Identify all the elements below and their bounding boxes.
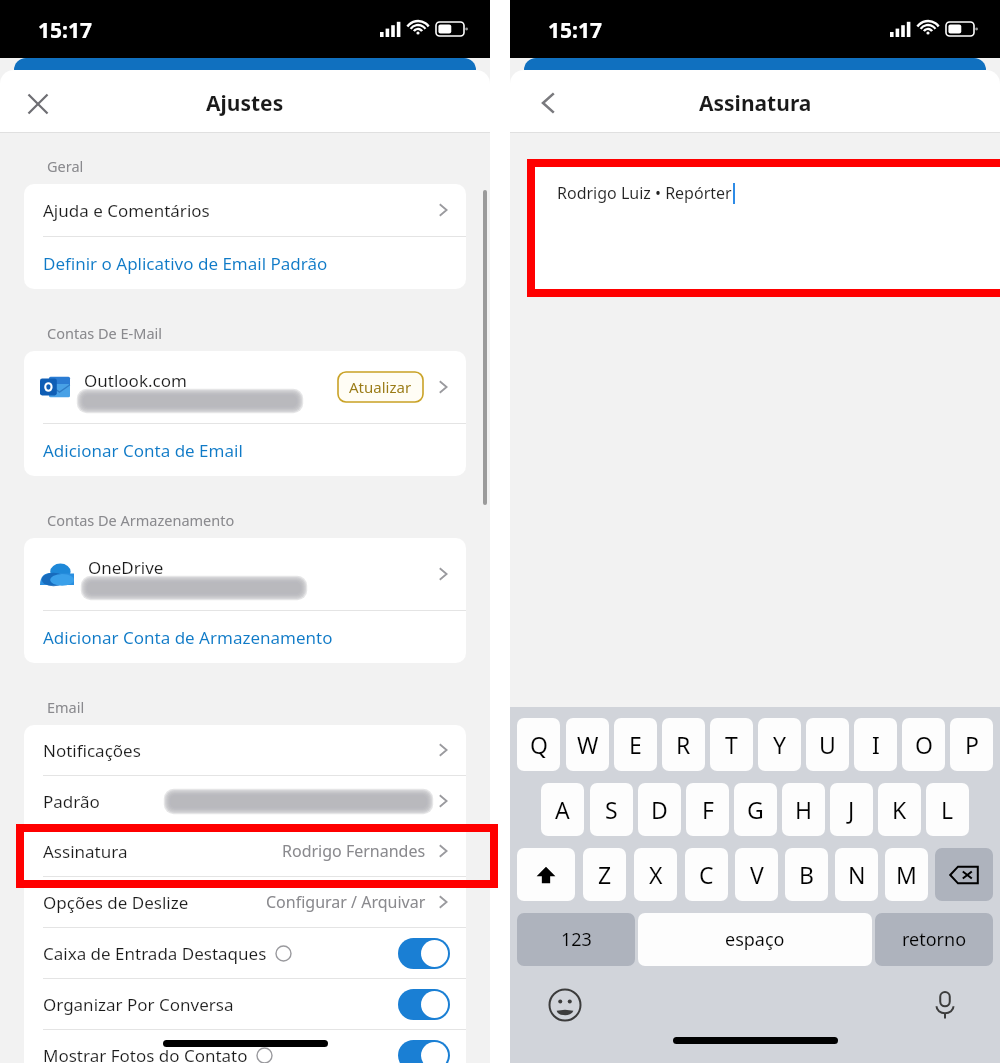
staticText: Rodrigo Fernandes [282,840,426,862]
button[interactable]: F [686,783,729,836]
button[interactable]: Ajuda e Comentários [24,184,466,236]
button[interactable]: R [662,718,705,771]
staticText: B [799,859,814,890]
staticText: Rodrigo Luiz • Repórter [557,182,732,204]
button[interactable]: S [590,783,633,836]
staticText: C [699,859,714,890]
button[interactable]: G [734,783,777,836]
staticText: R [676,729,691,760]
button[interactable]: Definir o Aplicativo de Email Padrão [24,237,466,289]
button[interactable]: Assinatura [24,826,466,876]
button[interactable]: OneDrive [24,538,466,610]
button[interactable]: Opções de Deslize [24,877,466,927]
button[interactable]: Close [24,90,52,118]
staticText: E [629,729,642,760]
staticText: V [750,859,764,890]
button[interactable]: Dictation [928,988,962,1022]
button[interactable]: Q [517,718,560,771]
staticText: K [892,794,907,825]
button[interactable]: E [614,718,657,771]
staticText: Q [530,729,548,760]
button[interactable]: Adicionar Conta de Armazenamento [24,611,466,663]
staticText: Notificações [43,739,141,762]
button[interactable]: Toggle [398,1040,450,1063]
button[interactable]: Key [935,848,993,901]
button[interactable]: M [885,848,928,901]
staticText: Mostrar Fotos do Contato [43,1044,248,1063]
button[interactable]: Rodrigo Luiz • Repórter [535,167,1000,289]
staticText: D [651,794,668,825]
button[interactable]: Outlook.com [24,351,466,423]
staticText: W [577,729,599,760]
staticText: Padrão [43,790,100,813]
button[interactable]: T [710,718,753,771]
button[interactable]: Caixa de Entrada Destaques [24,928,466,978]
staticText: P [965,729,979,760]
staticText: Outlook.com [84,369,187,392]
button[interactable]: X [634,848,677,901]
staticText: T [725,729,738,760]
button[interactable]: O [902,718,945,771]
staticText: F [702,794,714,825]
button[interactable]: Notificações [24,725,466,775]
button[interactable]: Toggle [398,989,450,1020]
button[interactable]: Key [517,848,575,901]
staticText: Y [773,729,787,760]
staticText: OneDrive [88,556,164,579]
staticText: Organizar Por Conversa [43,993,234,1016]
button[interactable]: Adicionar Conta de Email [24,424,466,476]
button[interactable]: Mostrar Fotos do Contato [24,1030,466,1063]
button[interactable]: C [685,848,728,901]
button[interactable]: Toggle [398,938,450,969]
staticText: Contas De E-Mail [47,323,163,343]
staticText: Adicionar Conta de Email [43,439,243,462]
staticText: M [896,859,917,890]
button[interactable]: V [735,848,778,901]
staticText: 15:17 [548,16,602,45]
staticText: Opções de Deslize [43,891,189,914]
staticText: 15:17 [38,16,92,45]
button[interactable]: K [878,783,921,836]
staticText: S [605,794,618,825]
button[interactable]: A [541,783,584,836]
staticText: Assinatura [43,840,128,863]
staticText: Adicionar Conta de Armazenamento [43,626,333,649]
staticText: N [848,859,866,890]
staticText: retorno [902,927,967,952]
button[interactable]: I [854,718,897,771]
button[interactable]: espaço [638,913,872,966]
staticText: Z [598,859,612,890]
staticText: Ajuda e Comentários [43,199,210,222]
button[interactable]: Organizar Por Conversa [24,979,466,1029]
button[interactable]: D [638,783,681,836]
staticText: J [848,794,855,825]
staticText: A [555,794,570,825]
button[interactable]: retorno [875,913,993,966]
staticText: Email [47,697,85,717]
staticText: Atualizar [349,377,412,397]
staticText: G [747,794,764,825]
button[interactable]: N [835,848,878,901]
button[interactable]: P [950,718,993,771]
button[interactable]: Z [583,848,626,901]
button[interactable]: Emoji [548,988,582,1022]
button[interactable]: U [806,718,849,771]
button[interactable]: L [926,783,969,836]
button[interactable]: Back [534,88,564,118]
staticText: U [819,729,836,760]
staticText: Definir o Aplicativo de Email Padrão [43,252,328,275]
button[interactable]: Atualizar [338,372,423,402]
button[interactable]: B [785,848,828,901]
staticText: Ajustes [206,89,284,118]
staticText: Assinatura [699,89,812,118]
staticText: Configurar / Arquivar [266,891,426,913]
button[interactable]: H [782,783,825,836]
button[interactable]: 123 [517,913,635,966]
button[interactable]: Y [758,718,801,771]
button[interactable]: Padrão [24,776,466,826]
staticText: espaço [725,927,785,952]
staticText: Geral [47,156,84,176]
button[interactable]: J [830,783,873,836]
staticText: L [941,794,954,825]
button[interactable]: W [566,718,609,771]
